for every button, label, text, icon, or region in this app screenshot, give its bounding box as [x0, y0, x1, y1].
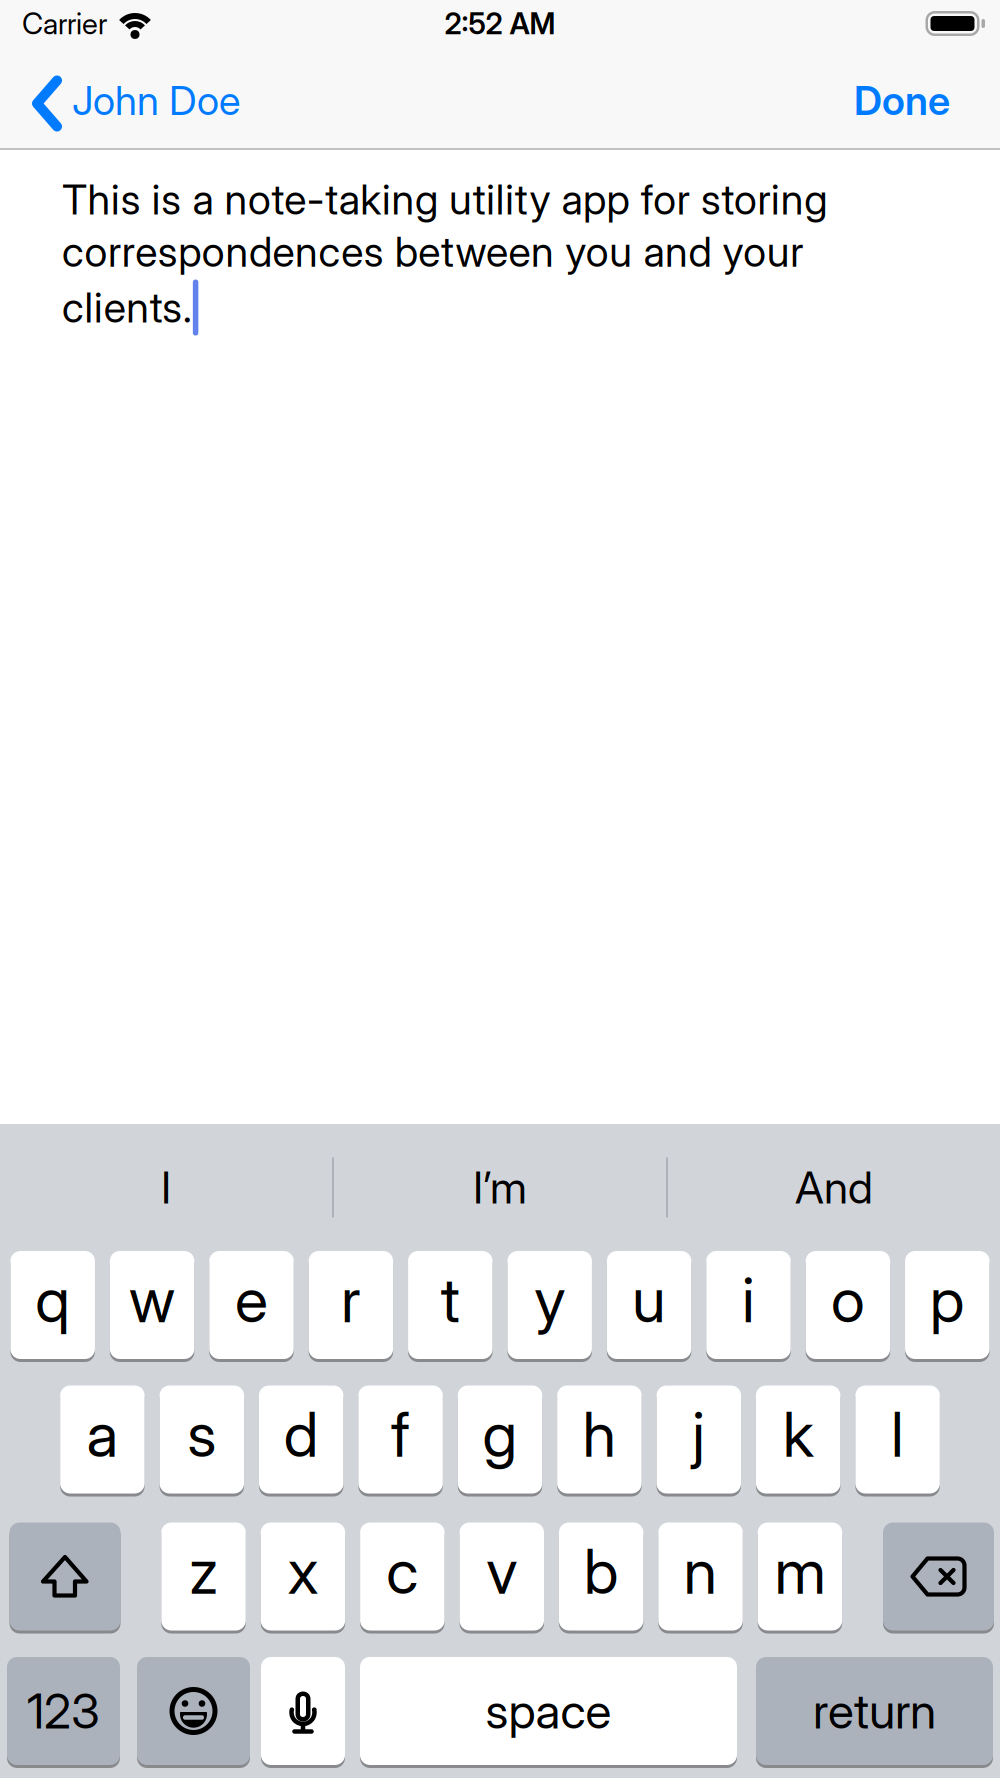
staticText: s: [187, 1398, 216, 1471]
staticText: This is a note-taking utility app for st…: [62, 175, 827, 224]
button[interactable]: c: [360, 1522, 445, 1630]
button[interactable]: m: [758, 1522, 842, 1630]
button[interactable]: l: [855, 1385, 940, 1493]
button[interactable]: f: [358, 1385, 443, 1493]
staticText: h: [582, 1398, 616, 1471]
staticText: And: [795, 1161, 873, 1213]
button[interactable]: o: [806, 1251, 890, 1359]
staticText: w: [129, 1264, 175, 1336]
button[interactable]: e: [209, 1251, 294, 1359]
button[interactable]: I: [0, 1124, 332, 1251]
staticText: f: [391, 1398, 410, 1471]
staticText: o: [831, 1264, 865, 1336]
button[interactable]: return: [756, 1657, 993, 1765]
staticText: John Doe: [72, 77, 240, 124]
button[interactable]: i: [706, 1251, 791, 1359]
staticText: l: [891, 1398, 904, 1471]
button[interactable]: p: [905, 1251, 989, 1359]
button[interactable]: d: [259, 1385, 343, 1493]
button[interactable]: Dictate: [261, 1657, 345, 1765]
button[interactable]: g: [458, 1385, 542, 1493]
button[interactable]: a: [60, 1385, 145, 1493]
staticText: 2:52 AM: [444, 6, 555, 41]
staticText: b: [584, 1535, 619, 1608]
staticText: u: [632, 1264, 666, 1336]
button[interactable]: Done: [854, 77, 1000, 124]
button[interactable]: I’m: [334, 1124, 666, 1251]
button[interactable]: k: [756, 1385, 840, 1493]
button[interactable]: j: [656, 1385, 741, 1493]
button[interactable]: u: [607, 1251, 691, 1359]
staticText: i: [742, 1264, 755, 1336]
staticText: a: [86, 1398, 118, 1471]
staticText: r: [341, 1264, 361, 1336]
staticText: correspondences between you and your: [62, 227, 803, 276]
staticText: q: [35, 1264, 70, 1336]
button[interactable]: q: [10, 1251, 95, 1359]
staticText: t: [441, 1264, 460, 1336]
staticText: x: [287, 1535, 318, 1608]
button[interactable]: z: [161, 1522, 246, 1630]
button[interactable]: w: [110, 1251, 194, 1359]
button[interactable]: b: [559, 1522, 643, 1630]
staticText: k: [783, 1398, 814, 1471]
staticText: Done: [854, 77, 950, 124]
button[interactable]: s: [159, 1385, 244, 1493]
button[interactable]: Delete: [883, 1522, 994, 1630]
button[interactable]: x: [261, 1522, 345, 1630]
staticText: I: [161, 1161, 171, 1213]
staticText: m: [774, 1535, 825, 1608]
staticText: return: [813, 1683, 936, 1739]
button[interactable]: Numbers: [7, 1657, 120, 1765]
button[interactable]: t: [408, 1251, 493, 1359]
button[interactable]: And: [668, 1124, 1000, 1251]
button[interactable]: space: [360, 1657, 737, 1765]
staticText: e: [235, 1264, 268, 1336]
staticText: z: [189, 1535, 218, 1608]
button[interactable]: r: [309, 1251, 393, 1359]
button[interactable]: y: [507, 1251, 592, 1359]
button[interactable]: v: [459, 1522, 544, 1630]
staticText: Carrier: [22, 6, 107, 41]
staticText: p: [930, 1264, 965, 1336]
staticText: space: [485, 1683, 611, 1739]
staticText: n: [683, 1535, 717, 1608]
staticText: c: [386, 1535, 418, 1608]
staticText: g: [482, 1398, 517, 1471]
button[interactable]: h: [557, 1385, 642, 1493]
button[interactable]: Back: [0, 72, 240, 128]
staticText: j: [692, 1398, 705, 1471]
staticText: I’m: [473, 1161, 527, 1213]
button[interactable]: n: [658, 1522, 743, 1630]
button[interactable]: Emoji: [137, 1657, 250, 1765]
staticText: y: [534, 1264, 565, 1336]
staticText: v: [486, 1535, 517, 1608]
staticText: d: [284, 1398, 319, 1471]
staticText: 123: [27, 1683, 100, 1739]
staticText: clients.: [62, 283, 192, 332]
button[interactable]: Shift: [9, 1522, 120, 1630]
